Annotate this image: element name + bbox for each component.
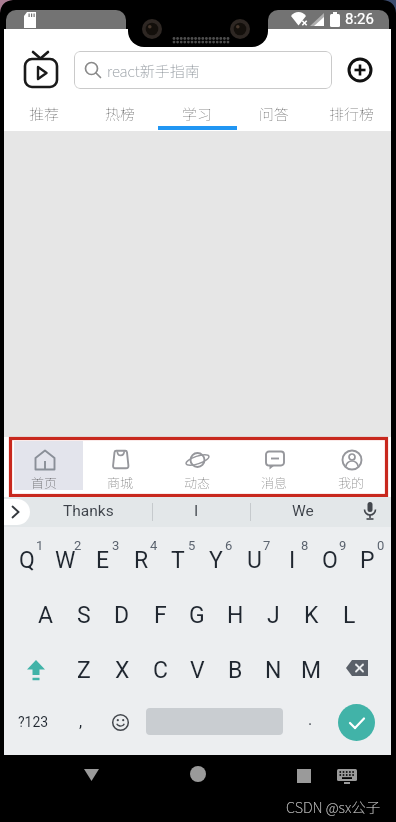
- staticText: K: [304, 602, 319, 629]
- button[interactable]: I: [273, 536, 311, 584]
- staticText: L: [343, 602, 356, 629]
- staticText: Q: [19, 547, 35, 574]
- staticText: C: [153, 657, 168, 684]
- button[interactable]: K: [292, 591, 330, 639]
- button[interactable]: 问答: [236, 96, 313, 131]
- staticText: react新手指南: [107, 60, 200, 82]
- staticText: B: [228, 657, 243, 684]
- staticText: 我的: [338, 473, 365, 492]
- button[interactable]: .: [308, 710, 313, 729]
- button[interactable]: R: [122, 536, 160, 584]
- staticText: N: [265, 657, 282, 684]
- button[interactable]: G: [178, 591, 216, 639]
- button[interactable]: [337, 769, 357, 784]
- button[interactable]: 热榜: [82, 96, 159, 131]
- staticText: 热榜: [105, 103, 136, 125]
- staticText: 动态: [184, 473, 211, 492]
- staticText: F: [154, 602, 167, 629]
- staticText: CSDN @sx公子: [286, 796, 381, 817]
- button[interactable]: V: [178, 646, 216, 694]
- staticText: M: [301, 657, 322, 684]
- staticText: W: [55, 547, 76, 574]
- button[interactable]: 首页: [6, 440, 82, 493]
- staticText: 商城: [107, 473, 134, 492]
- button[interactable]: 动态: [159, 440, 236, 493]
- button[interactable]: [25, 660, 47, 681]
- staticText: O: [322, 547, 338, 574]
- staticText: 学习: [182, 103, 213, 125]
- button[interactable]: [338, 704, 375, 741]
- button[interactable]: [190, 766, 206, 782]
- button[interactable]: react新手指南: [74, 51, 332, 89]
- button[interactable]: A: [27, 591, 65, 639]
- staticText: 消息: [261, 473, 288, 492]
- button[interactable]: P: [348, 536, 386, 584]
- staticText: R: [134, 547, 149, 574]
- staticText: J: [267, 602, 280, 629]
- staticText: 3: [112, 538, 120, 553]
- button[interactable]: B: [216, 646, 254, 694]
- staticText: X: [115, 657, 130, 684]
- staticText: G: [189, 602, 205, 629]
- staticText: E: [96, 547, 110, 574]
- button[interactable]: X: [103, 646, 141, 694]
- staticText: 8: [301, 538, 309, 553]
- button[interactable]: W: [46, 536, 84, 584]
- staticText: A: [38, 602, 54, 629]
- button[interactable]: J: [254, 591, 292, 639]
- button[interactable]: [10, 505, 22, 519]
- button[interactable]: D: [103, 591, 141, 639]
- button[interactable]: Y: [197, 536, 235, 584]
- button[interactable]: [363, 502, 377, 522]
- staticText: T: [171, 547, 185, 574]
- staticText: 推荐: [29, 103, 60, 125]
- staticText: 排行榜: [329, 103, 375, 125]
- button[interactable]: Q: [8, 536, 46, 584]
- button[interactable]: 消息: [236, 440, 313, 493]
- button[interactable]: [112, 714, 129, 731]
- button[interactable]: 排行榜: [313, 96, 390, 131]
- button[interactable]: I: [194, 502, 199, 520]
- staticText: 6: [225, 538, 233, 553]
- button[interactable]: Z: [65, 646, 103, 694]
- button[interactable]: F: [141, 591, 179, 639]
- staticText: 4: [150, 538, 158, 553]
- staticText: V: [190, 657, 205, 684]
- button[interactable]: [347, 57, 373, 83]
- staticText: Z: [77, 657, 91, 684]
- button[interactable]: Thanks: [63, 502, 114, 520]
- staticText: 9: [339, 538, 347, 553]
- button[interactable]: N: [254, 646, 292, 694]
- button[interactable]: M: [292, 646, 330, 694]
- button[interactable]: 我的: [313, 440, 390, 493]
- button[interactable]: [24, 48, 58, 88]
- button[interactable]: T: [159, 536, 197, 584]
- staticText: 8:26: [345, 10, 374, 28]
- button[interactable]: O: [311, 536, 349, 584]
- button[interactable]: C: [141, 646, 179, 694]
- button[interactable]: 商城: [82, 440, 159, 493]
- button[interactable]: ,: [79, 712, 83, 731]
- button[interactable]: S: [65, 591, 103, 639]
- staticText: Y: [209, 547, 223, 574]
- staticText: 首页: [31, 473, 58, 492]
- staticText: D: [114, 602, 130, 629]
- button[interactable]: [84, 769, 99, 781]
- staticText: 问答: [259, 103, 290, 125]
- staticText: I: [289, 547, 296, 574]
- staticText: 7: [263, 538, 271, 553]
- button[interactable]: 推荐: [6, 96, 82, 131]
- staticText: S: [77, 602, 91, 629]
- button[interactable]: We: [292, 502, 314, 520]
- staticText: H: [227, 602, 244, 629]
- button[interactable]: [346, 660, 368, 676]
- button[interactable]: ?123: [18, 714, 49, 730]
- button[interactable]: E: [84, 536, 122, 584]
- button[interactable]: 学习: [159, 96, 236, 131]
- button[interactable]: H: [216, 591, 254, 639]
- button[interactable]: U: [235, 536, 273, 584]
- button[interactable]: L: [330, 591, 368, 639]
- staticText: 1: [36, 538, 44, 553]
